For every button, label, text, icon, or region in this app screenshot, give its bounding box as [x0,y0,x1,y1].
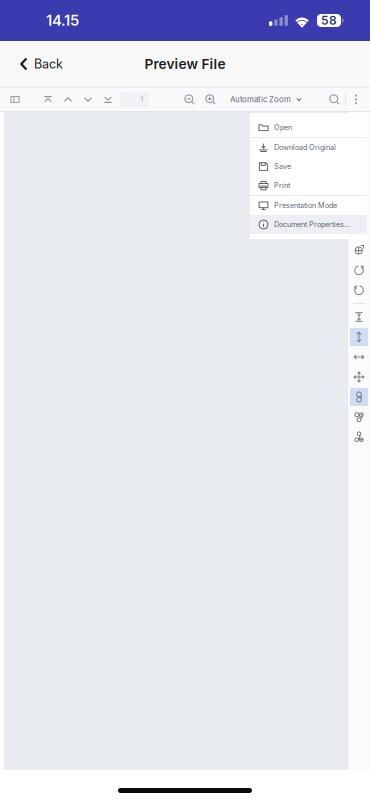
button[interactable]: Presentation Mode [250,196,367,215]
button[interactable]: Page tools [350,241,368,259]
button[interactable]: Toggle Sidebar [4,87,26,111]
button[interactable]: Search [324,87,345,111]
button[interactable]: Previous Page [58,87,78,111]
staticText: Presentation Mode [274,201,337,210]
button[interactable]: Last Page [98,87,118,111]
button[interactable]: Next Page [78,87,98,111]
button[interactable]: Wrapped scrolling [350,368,368,386]
button[interactable]: No spreads [350,388,368,406]
button[interactable]: Horizontal scrolling [350,348,368,366]
button[interactable]: Even spreads [350,428,368,446]
button[interactable]: Rotate clockwise [350,261,368,279]
staticText: Back [34,56,63,72]
button[interactable]: More options [346,87,366,111]
button[interactable]: First Page [38,87,58,111]
button[interactable]: Download Original [250,138,367,157]
button[interactable]: 1 [120,92,149,107]
staticText: Save [274,162,291,171]
staticText: Download Original [274,143,336,152]
button[interactable]: Odd spreads [350,408,368,426]
button[interactable]: Document Properties... [250,215,367,234]
staticText: 14.15 [46,12,79,29]
staticText: Document Properties... [274,220,350,229]
button[interactable]: Vertical scrolling [350,328,368,346]
staticText: Print [274,181,290,190]
button[interactable]: Zoom In [200,87,221,111]
button[interactable]: Print [250,176,367,195]
button[interactable]: Text selection tool [350,308,368,326]
staticText: 1 [140,95,143,104]
button[interactable]: Back [0,47,63,81]
button[interactable]: Open [250,118,367,137]
button[interactable]: Save [250,157,367,176]
button[interactable]: Rotate counter-clockwise [350,281,368,299]
staticText: Preview File [144,56,225,72]
staticText: Automatic Zoom [230,95,291,104]
button[interactable]: Zoom Out [179,87,200,111]
staticText: 58 [321,13,337,28]
staticText: Open [274,123,292,132]
button[interactable]: Automatic Zoom [226,90,307,108]
